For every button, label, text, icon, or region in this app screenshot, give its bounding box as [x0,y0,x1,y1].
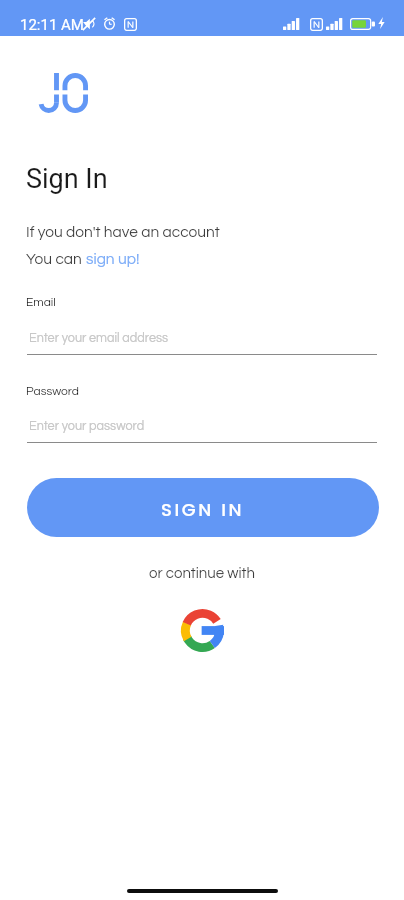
staticText: Password [26,385,79,397]
staticText: Sign In [26,163,108,195]
button[interactable]: Continue with Google [178,606,226,654]
staticText: You can [26,251,86,267]
staticText: Email [26,296,56,308]
staticText: SIGN IN [161,497,245,522]
staticText: 12:11 AM [20,16,84,34]
staticText: or continue with [149,566,255,581]
button[interactable]: SIGN IN [27,478,379,537]
staticText: Enter your password [29,420,145,433]
staticText: Enter your email address [29,332,169,345]
button[interactable]: sign up! [86,251,140,267]
staticText: If you don't have an account [26,224,220,240]
